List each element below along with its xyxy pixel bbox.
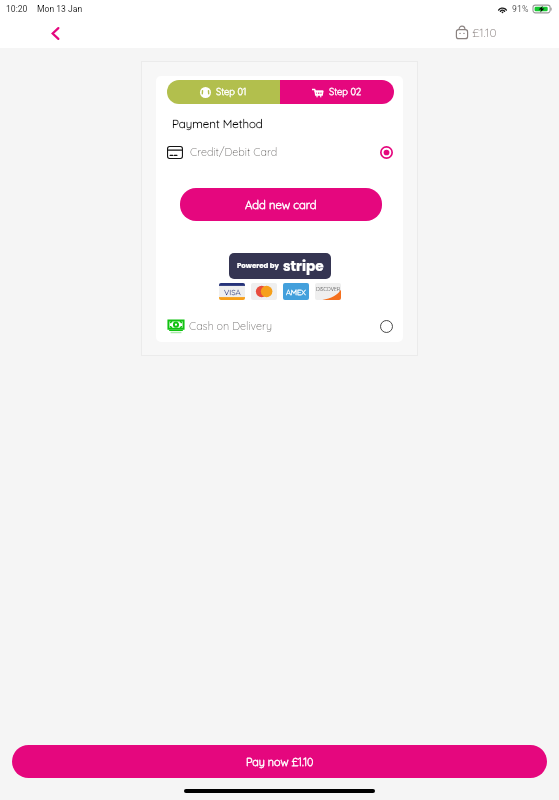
button[interactable]: Pay now £1.10	[12, 745, 547, 778]
button[interactable]: Credit/Debit Card	[158, 140, 403, 164]
staticText: 10:20	[6, 4, 28, 14]
staticText: VISA	[224, 287, 241, 297]
staticText: Powered by	[237, 261, 279, 271]
staticText: Mon 13 Jan	[37, 4, 83, 14]
staticText: Payment Method	[172, 116, 263, 131]
button[interactable]: £1.10	[455, 20, 497, 44]
staticText: AMEX	[286, 287, 306, 296]
staticText: Step 02	[329, 86, 362, 98]
button[interactable]: Step 02	[280, 80, 394, 104]
staticText: 91%	[512, 4, 529, 14]
button[interactable]: Step 01	[167, 80, 280, 104]
staticText: Cash on Delivery	[189, 319, 273, 333]
button[interactable]: Cash on Delivery	[158, 314, 403, 338]
staticText: £1.10	[472, 25, 497, 40]
staticText: Add new card	[245, 198, 317, 212]
button[interactable]: Add new card	[180, 188, 382, 221]
staticText: DISCOVER	[316, 286, 341, 292]
staticText: stripe	[283, 257, 324, 276]
staticText: Step 01	[216, 86, 247, 98]
staticText: Pay now £1.10	[246, 755, 314, 769]
staticText: Credit/Debit Card	[190, 145, 278, 159]
button[interactable]: Back	[42, 20, 68, 46]
